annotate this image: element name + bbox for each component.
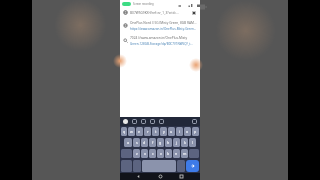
staticText: d	[143, 140, 146, 145]
staticText: z	[136, 151, 138, 156]
button[interactable]: s	[133, 138, 140, 147]
other: History	[123, 23, 128, 28]
button[interactable]: h	[165, 138, 172, 147]
button[interactable]: Shift	[121, 149, 132, 158]
button[interactable]: Clear	[191, 10, 197, 16]
staticText: q	[123, 129, 126, 134]
button[interactable]: n	[173, 149, 180, 158]
button[interactable]: o	[184, 127, 191, 136]
button[interactable]: Symbols	[121, 160, 132, 172]
staticText: k	[184, 140, 186, 145]
button[interactable]: u	[168, 127, 175, 136]
button[interactable]: z	[133, 149, 140, 158]
staticText: u	[170, 129, 173, 134]
staticText: B07W5G9KXH/ref=sr_1_3?crid=...	[130, 11, 190, 15]
button[interactable]: Clipboard	[159, 119, 164, 124]
button[interactable]: Voice input	[192, 119, 197, 124]
staticText: t	[155, 129, 157, 134]
button[interactable]: y	[160, 127, 167, 136]
button[interactable]: v	[157, 149, 164, 158]
button[interactable]: i	[176, 127, 183, 136]
staticText: 7024 //www.amazon.in/OnePlus-Misty	[130, 36, 188, 40]
other: Search	[123, 38, 128, 43]
staticText: a	[127, 140, 130, 145]
staticText: w	[130, 129, 133, 134]
staticText: l	[192, 140, 193, 145]
staticText: o	[186, 129, 189, 134]
staticText: f	[152, 140, 154, 145]
button[interactable]: History	[120, 18, 200, 33]
button[interactable]: c	[149, 149, 156, 158]
button[interactable]: g	[157, 138, 164, 147]
button[interactable]: j	[173, 138, 180, 147]
button[interactable]: Search	[120, 33, 200, 48]
other: Site info	[123, 10, 128, 15]
button[interactable]: e	[136, 127, 143, 136]
staticText: i	[179, 129, 180, 134]
staticText: r	[147, 129, 149, 134]
button[interactable]: m	[181, 149, 188, 158]
button[interactable]: b	[165, 149, 172, 158]
staticText: c	[152, 151, 154, 156]
button[interactable]: Space	[142, 160, 176, 172]
staticText: Green-128GB-Storage/dp/B0C7V1NW5Q?_t…	[130, 42, 193, 46]
button[interactable]: r	[144, 127, 151, 136]
button[interactable]: Comma	[133, 160, 141, 172]
staticText: p	[194, 129, 197, 134]
button[interactable]: q	[121, 127, 127, 136]
staticText: m	[183, 151, 187, 156]
button[interactable]: Period	[177, 160, 185, 172]
button[interactable]: Stickers	[141, 119, 146, 124]
button[interactable]: Google	[123, 119, 128, 124]
button[interactable]: Home	[157, 173, 164, 180]
button[interactable]: Site info	[120, 7, 200, 18]
staticText: y	[163, 129, 165, 134]
button[interactable]: l	[189, 138, 196, 147]
button[interactable]: k	[181, 138, 188, 147]
staticText: g	[159, 140, 162, 145]
staticText: n	[175, 151, 178, 156]
staticText: e	[138, 129, 141, 134]
staticText: j	[176, 140, 177, 145]
button[interactable]: w	[128, 127, 135, 136]
button[interactable]: Back	[135, 173, 142, 180]
staticText: s	[136, 140, 138, 145]
button[interactable]: GIF	[150, 119, 155, 124]
staticText: v	[160, 151, 162, 156]
button[interactable]: p	[192, 127, 199, 136]
staticText: OnePlus Nord 3 5G (Misty Green, 8GB RAM,…	[130, 21, 197, 25]
button[interactable]: x	[141, 149, 148, 158]
button[interactable]: Enter	[186, 160, 199, 172]
staticText: https://www.amazon.in/OnePlus-Misty-Gree…	[130, 27, 197, 31]
button[interactable]: t	[152, 127, 159, 136]
button[interactable]: a	[124, 138, 132, 147]
button[interactable]: f	[149, 138, 156, 147]
staticText: Screen recording	[133, 2, 154, 6]
button[interactable]: Themes	[132, 119, 137, 124]
staticText: h	[167, 140, 170, 145]
staticText: b	[167, 151, 170, 156]
button[interactable]: Backspace	[189, 149, 199, 158]
button[interactable]: d	[141, 138, 148, 147]
staticText: x	[144, 151, 146, 156]
button[interactable]: Recents	[178, 173, 185, 180]
